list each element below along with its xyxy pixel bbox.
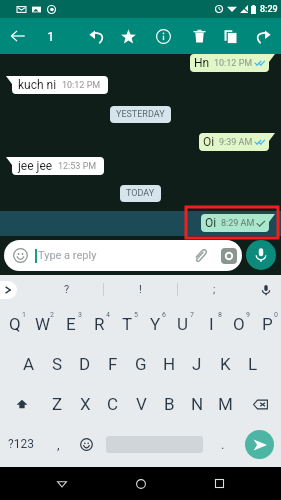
staticText: C [107,394,119,414]
staticText: X [80,394,91,414]
staticText: ! [139,283,142,296]
staticText: O [233,314,245,334]
staticText: ?123 [8,437,34,451]
button[interactable]: O [225,304,253,344]
staticText: Z [52,394,63,414]
button[interactable]: A [15,344,43,384]
button[interactable]: Z [43,384,71,424]
button[interactable]: Message info [147,18,179,54]
button[interactable]: L [239,344,267,384]
button[interactable]: G [127,344,155,384]
staticText: P [262,314,273,334]
button[interactable]: Oi [201,214,275,232]
button[interactable]: Expand suggestions [0,275,30,304]
staticText: N [191,394,204,414]
staticText: 8:29 AM [221,218,255,229]
staticText: U [177,314,189,334]
staticText: ; [213,283,216,296]
button[interactable]: Q [0,304,29,344]
staticText: ? [64,283,70,296]
button[interactable]: Record voice message [246,240,276,270]
button[interactable]: Camera [216,240,242,271]
button[interactable]: Recent apps [202,467,236,500]
button[interactable]: jee jee [6,157,104,175]
button[interactable]: Star [112,18,144,54]
button[interactable]: Reply [80,18,112,54]
button[interactable]: W [29,304,57,344]
staticText: Hn [194,56,210,70]
button[interactable]: R [85,304,113,344]
button[interactable]: Voice input [251,275,281,304]
button[interactable]: X [71,384,99,424]
staticText: 4 [106,311,110,319]
staticText: K [220,354,231,374]
button[interactable]: D [71,344,99,384]
staticText: 5 [134,311,138,319]
button[interactable]: K [211,344,239,384]
button[interactable]: kuch ni [6,76,108,94]
staticText: 12:53 PM [58,161,97,172]
button[interactable]: Forward [247,18,279,54]
button[interactable]: C [99,384,127,424]
staticText: H [163,354,176,374]
staticText: E [66,314,76,334]
staticText: L [248,354,258,374]
button[interactable]: T [113,304,141,344]
staticText: kuch ni [18,78,57,92]
staticText: jee jee [18,159,53,173]
staticText: 0 [274,311,278,319]
staticText: Q [9,314,21,334]
button[interactable]: V [127,384,155,424]
staticText: 3 [78,311,82,319]
staticText: B [164,394,175,414]
staticText: . [221,437,225,452]
button[interactable]: Send [238,424,281,464]
button[interactable]: J [183,344,211,384]
button[interactable]: . [208,424,238,464]
button[interactable]: Oi [199,133,275,151]
button[interactable]: I [197,304,225,344]
staticText: 1 [22,311,26,319]
staticText: 10:12 PM [214,58,253,69]
staticText: Y [150,314,161,334]
button[interactable]: Shift [0,384,43,424]
button[interactable]: Copy [214,18,246,54]
staticText: V [136,394,147,414]
staticText: 10:12 PM [62,80,101,91]
button[interactable]: P [253,304,281,344]
button[interactable]: M [211,384,239,424]
button[interactable]: N [183,384,211,424]
staticText: T [122,314,133,334]
button[interactable]: Space [101,424,208,464]
button[interactable]: E [57,304,85,344]
staticText: M [218,394,233,414]
button[interactable]: Back [45,467,79,500]
button[interactable]: Hn [190,54,275,72]
button[interactable]: Type a reply [4,240,242,271]
staticText: Oi [203,135,215,149]
button[interactable]: ? [30,275,103,304]
staticText: 6 [162,311,166,319]
button[interactable]: Y [141,304,169,344]
button[interactable]: S [43,344,71,384]
button[interactable]: F [99,344,127,384]
button[interactable]: ! [104,275,177,304]
staticText: YESTERDAY [116,109,165,120]
button[interactable]: Emoji [71,424,101,464]
button[interactable]: Backspace [239,384,281,424]
staticText: Type a reply [38,249,97,262]
button[interactable]: Delete [183,18,215,54]
button[interactable]: H [155,344,183,384]
staticText: Oi [205,216,217,230]
staticText: TODAY [126,188,155,199]
button[interactable]: ; [178,275,251,304]
staticText: 2 [50,311,54,319]
button[interactable]: ?123 [0,424,42,464]
button[interactable]: B [155,384,183,424]
button[interactable]: Back [2,18,34,54]
button[interactable]: Attach [188,240,212,271]
button[interactable]: U [169,304,197,344]
staticText: 9:39 AM [219,137,253,148]
button[interactable]: , [42,424,74,464]
button[interactable]: Home [124,467,158,500]
